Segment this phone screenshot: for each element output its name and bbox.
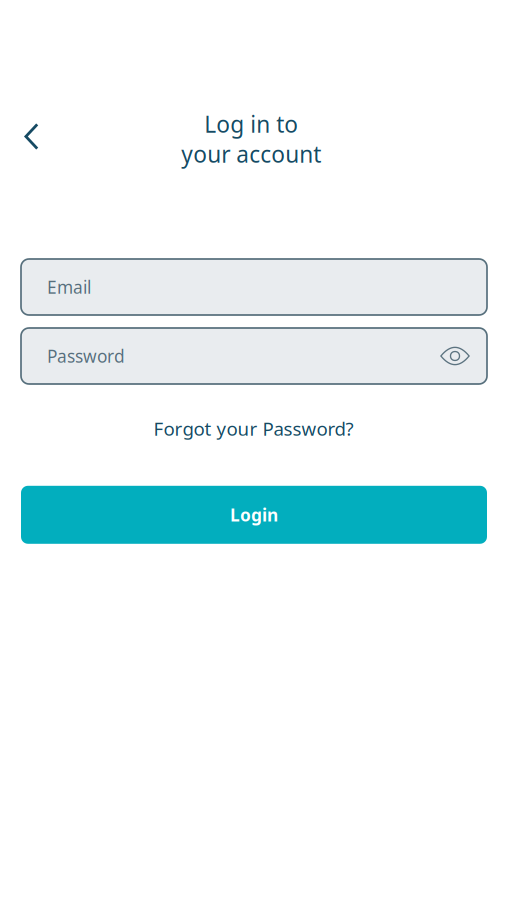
staticText: Forgot your Password? [153, 416, 353, 441]
button[interactable]: Email [21, 259, 487, 315]
staticText: Log in to your account [181, 109, 321, 169]
button[interactable]: Show password [440, 346, 470, 365]
staticText: Password [47, 344, 125, 367]
staticText: Email [47, 275, 91, 298]
button[interactable]: Back [7, 115, 55, 163]
button[interactable]: Login [21, 486, 487, 544]
staticText: Login [230, 503, 278, 526]
button[interactable]: Forgot your Password? [153, 406, 353, 451]
